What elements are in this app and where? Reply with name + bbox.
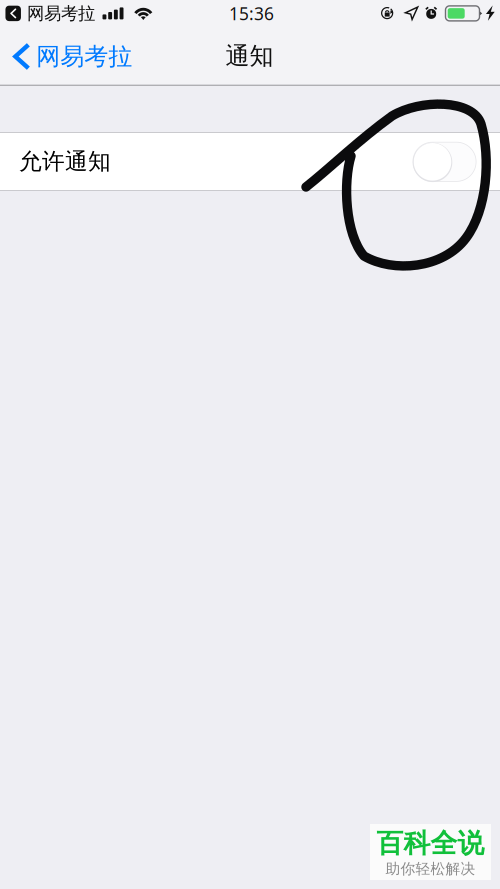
button[interactable]: 允许通知 bbox=[0, 133, 500, 190]
button[interactable]: 网易考拉 bbox=[5, 3, 95, 24]
button[interactable]: 网易考拉 bbox=[2, 32, 142, 81]
staticText: 15:36 bbox=[229, 2, 274, 25]
staticText: 助你轻松解决 bbox=[385, 860, 475, 878]
staticText: 百科全说 bbox=[376, 827, 484, 860]
staticText: 允许通知 bbox=[19, 148, 111, 175]
staticText: 网易考拉 bbox=[36, 42, 132, 71]
staticText: 网易考拉 bbox=[27, 3, 95, 24]
staticText: 通知 bbox=[225, 41, 273, 71]
